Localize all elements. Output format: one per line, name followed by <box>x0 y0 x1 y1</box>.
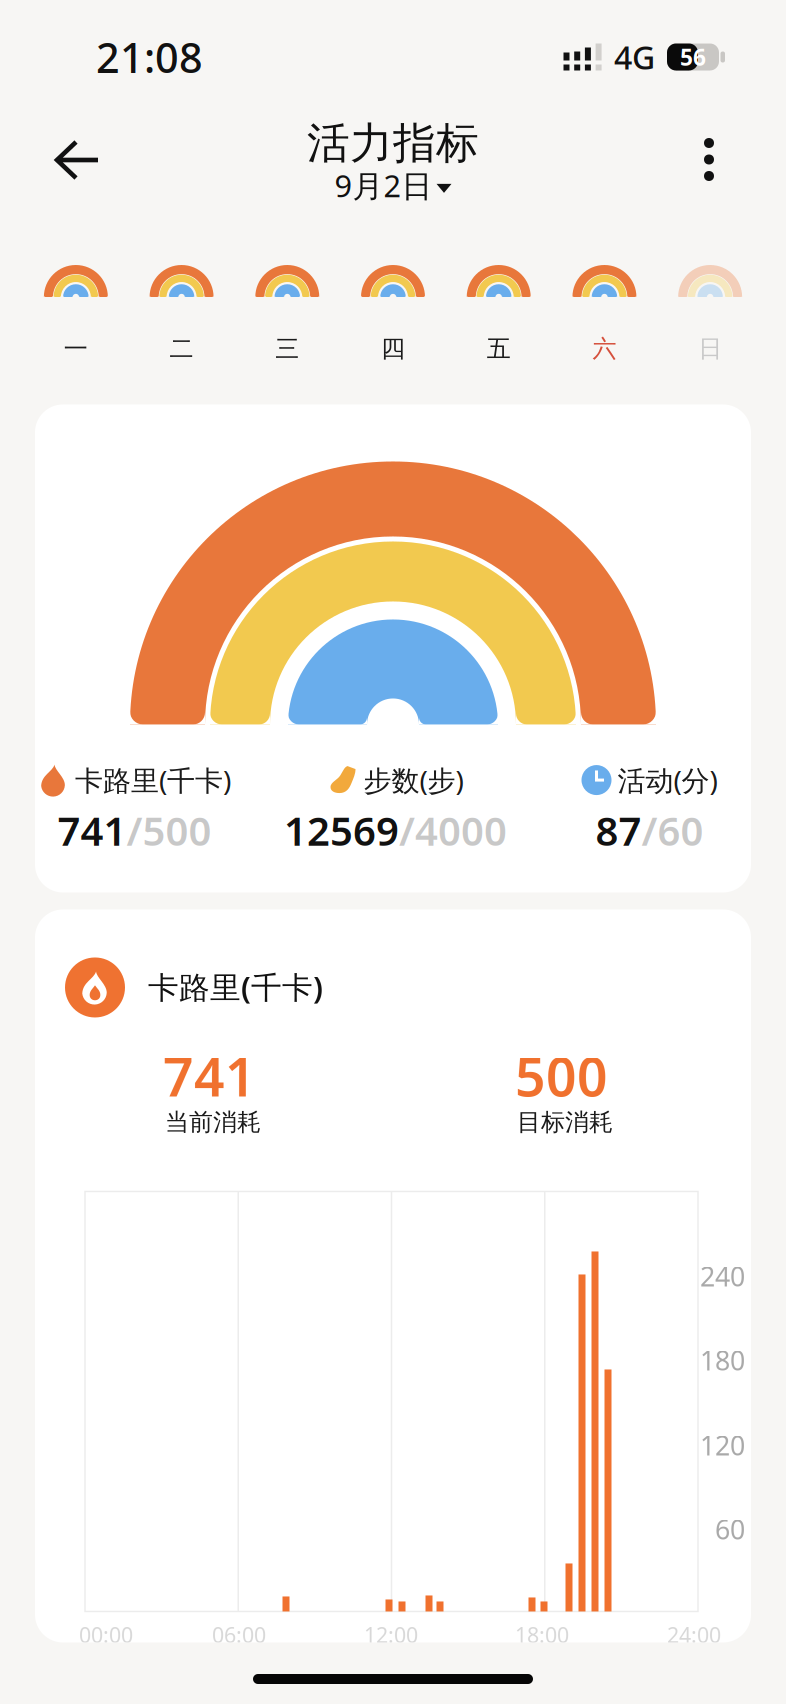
staticText: 二 <box>170 334 194 363</box>
staticText: 一 <box>64 334 88 363</box>
staticText: 4G <box>614 36 655 78</box>
button[interactable]: 五 <box>467 265 531 363</box>
staticText: 9月2日 <box>334 165 432 206</box>
button[interactable]: 日 <box>678 265 742 363</box>
button[interactable]: More <box>704 86 714 181</box>
staticText: 56 <box>680 42 706 72</box>
staticText: /60 <box>641 804 703 857</box>
staticText: 18:00 <box>515 1620 569 1649</box>
staticText: 21:08 <box>96 30 203 84</box>
staticText: 12:00 <box>364 1620 418 1649</box>
staticText: 卡路里(千卡) <box>75 761 231 799</box>
button[interactable]: 9月2日 <box>334 165 451 206</box>
staticText: 24:00 <box>667 1620 721 1649</box>
staticText: 当前消耗 <box>165 1107 261 1137</box>
staticText: 180 <box>700 1342 745 1378</box>
staticText: 日 <box>698 334 722 363</box>
staticText: 240 <box>700 1258 745 1294</box>
staticText: 741 <box>57 804 126 857</box>
staticText: /500 <box>126 804 211 857</box>
staticText: 三 <box>275 334 299 363</box>
staticText: 500 <box>515 1040 608 1111</box>
staticText: 12569 <box>284 804 399 857</box>
button[interactable]: 二 <box>150 265 214 363</box>
staticText: 06:00 <box>212 1620 266 1649</box>
staticText: /4000 <box>399 804 507 857</box>
staticText: 120 <box>700 1427 745 1463</box>
button[interactable]: Back <box>51 86 99 181</box>
staticText: 四 <box>381 334 405 363</box>
button[interactable]: 六 <box>572 265 636 363</box>
staticText: 741 <box>163 1040 256 1111</box>
staticText: 步数(步) <box>363 761 463 799</box>
staticText: 目标消耗 <box>517 1107 613 1137</box>
staticText: 卡路里(千卡) <box>148 966 323 1007</box>
staticText: 60 <box>715 1511 745 1547</box>
staticText: 五 <box>487 334 511 363</box>
staticText: 00:00 <box>79 1620 133 1649</box>
staticText: 活动(分) <box>617 761 717 799</box>
staticText: 六 <box>592 334 616 363</box>
button[interactable]: 四 <box>361 265 425 363</box>
staticText: 活力指标 <box>307 117 479 169</box>
staticText: 87 <box>595 804 641 857</box>
button[interactable]: 一 <box>44 265 108 363</box>
button[interactable]: 三 <box>255 265 319 363</box>
